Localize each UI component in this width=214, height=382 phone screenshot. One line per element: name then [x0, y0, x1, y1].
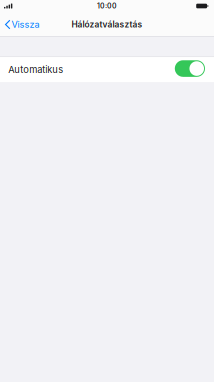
button[interactable]: Automatikus	[0, 57, 214, 82]
staticText: Hálózatválasztás	[71, 19, 142, 30]
button[interactable]: Vissza	[0, 12, 44, 36]
staticText: Automatikus	[8, 64, 63, 75]
staticText: 10:00	[97, 2, 117, 10]
staticText: Vissza	[12, 19, 40, 30]
